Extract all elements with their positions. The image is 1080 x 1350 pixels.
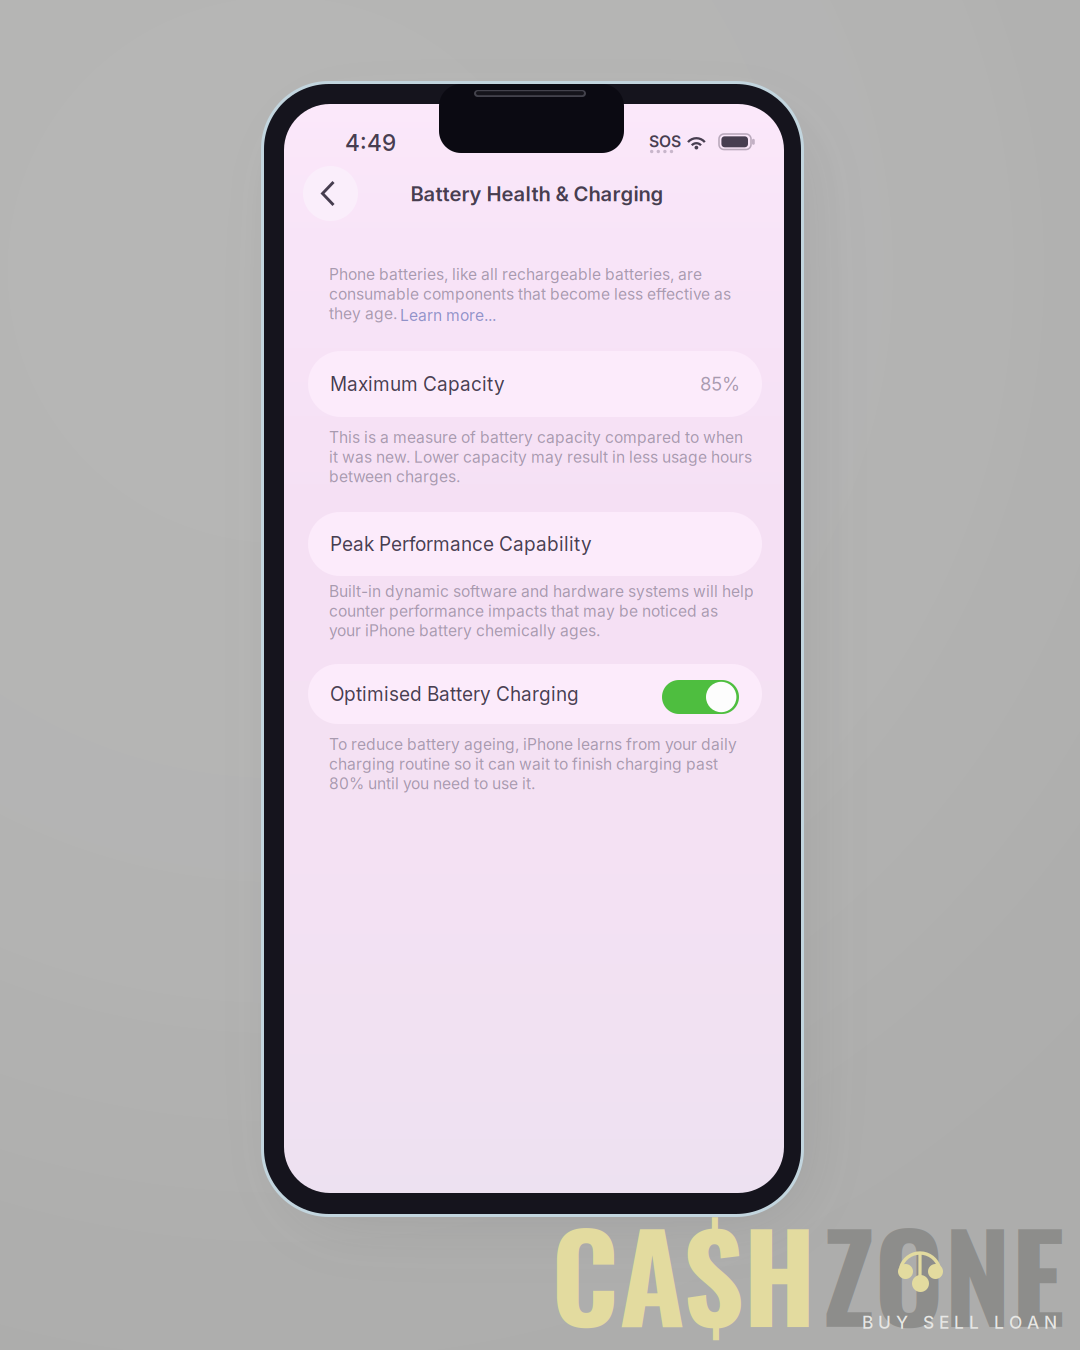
staticText: CA$H [551,1184,816,1350]
staticText: counter performance impacts that may be … [329,602,718,620]
staticText: ZONE [823,1184,1065,1350]
staticText: Maximum Capacity [330,372,505,395]
button[interactable]: Peak Performance Capability [308,512,762,576]
staticText: they age. [329,304,397,323]
staticText: Peak Performance Capability [330,532,592,555]
staticText: Battery Health & Charging [410,182,663,206]
button[interactable]: Optimised Battery Charging [308,664,762,724]
staticText: charging routine so it can wait to finis… [329,755,718,773]
button[interactable]: Maximum Capacity [308,351,762,417]
staticText: Built-in dynamic software and hardware s… [329,582,754,601]
staticText: Phone batteries, like all rechargeable b… [329,265,702,284]
staticText: Optimised Battery Charging [330,682,579,705]
staticText: This is a measure of battery capacity co… [329,428,743,447]
staticText: SOS [649,132,681,151]
staticText: To reduce battery ageing, iPhone learns … [329,735,737,754]
staticText: 85% [700,373,740,395]
staticText: Learn more... [400,306,496,325]
staticText: 4:49 [345,129,396,156]
button[interactable]: Back [303,166,358,221]
staticText: between charges. [329,467,460,486]
staticText: your iPhone battery chemically ages. [329,621,600,640]
staticText: consumable components that become less e… [329,285,731,303]
staticText: 80% until you need to use it. [329,774,535,793]
button[interactable]: Learn more... [400,304,550,326]
staticText: B U Y S E L L L O A N [862,1312,1057,1333]
staticText: it was new. Lower capacity may result in… [329,448,752,466]
